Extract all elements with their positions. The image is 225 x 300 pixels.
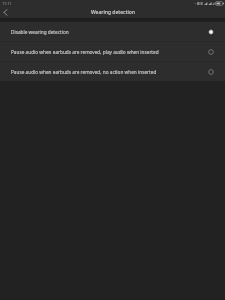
button[interactable]: Pause audio when earbuds are removed, pl… (0, 42, 225, 61)
button[interactable]: Disable wearing detection (0, 22, 225, 41)
button[interactable]: Back (0, 9, 11, 18)
button[interactable]: Pause audio when earbuds are removed, no… (0, 62, 225, 81)
staticText: Pause audio when earbuds are removed, pl… (11, 49, 204, 55)
staticText: Pause audio when earbuds are removed, no… (11, 69, 204, 75)
staticText: 11:11 (2, 1, 12, 6)
staticText: Disable wearing detection (11, 29, 204, 35)
staticText: Wearing detection (91, 9, 136, 16)
